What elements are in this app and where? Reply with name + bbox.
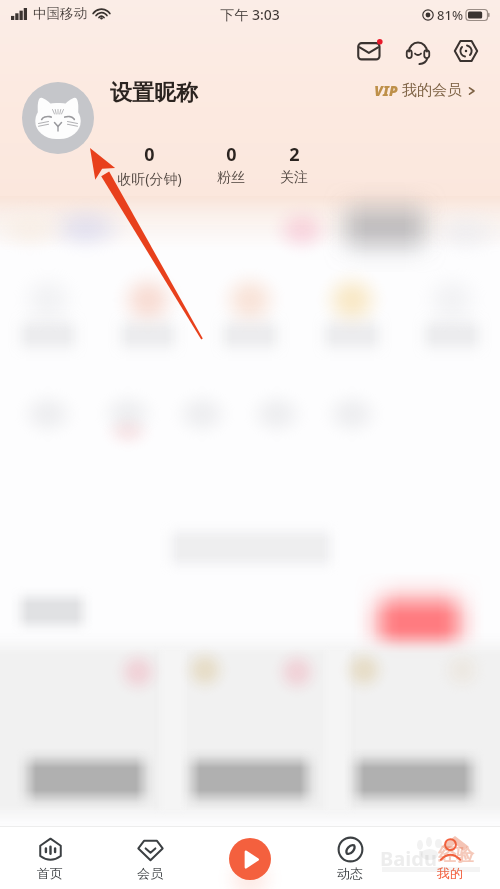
button[interactable]: 我的: [420, 836, 480, 881]
button[interactable]: 0: [186, 142, 276, 187]
staticText: 首页: [37, 865, 63, 881]
button[interactable]: Play: [229, 838, 271, 880]
staticText: 0: [144, 142, 155, 167]
button[interactable]: VIP: [374, 81, 477, 100]
button[interactable]: Customer service: [400, 33, 436, 69]
button[interactable]: 首页: [20, 836, 80, 881]
staticText: VIP: [374, 81, 398, 100]
staticText: 经验: [438, 844, 474, 867]
button[interactable]: Settings: [448, 33, 484, 69]
staticText: 0: [226, 142, 237, 167]
staticText: 会员: [137, 865, 163, 881]
staticText: 设置昵称: [110, 79, 198, 107]
button[interactable]: 设置昵称: [110, 79, 198, 107]
staticText: 我的会员: [402, 81, 462, 100]
staticText: 2: [289, 142, 300, 167]
button[interactable]: 0: [104, 142, 194, 188]
staticText: 81%: [437, 6, 463, 24]
staticText: 收听(分钟): [117, 169, 182, 188]
button[interactable]: Messages: [352, 33, 388, 69]
button[interactable]: 动态: [320, 836, 380, 881]
staticText: 下午 3:03: [220, 5, 280, 24]
staticText: Baidu: [380, 845, 437, 872]
button[interactable]: 会员: [120, 836, 180, 881]
staticText: 关注: [280, 169, 308, 187]
staticText: 动态: [337, 865, 363, 881]
staticText: 我的: [437, 865, 463, 881]
button[interactable]: 2: [249, 142, 339, 187]
staticText: 粉丝: [217, 169, 245, 187]
button[interactable]: Avatar: [22, 82, 94, 154]
staticText: 中国移动: [33, 5, 87, 22]
